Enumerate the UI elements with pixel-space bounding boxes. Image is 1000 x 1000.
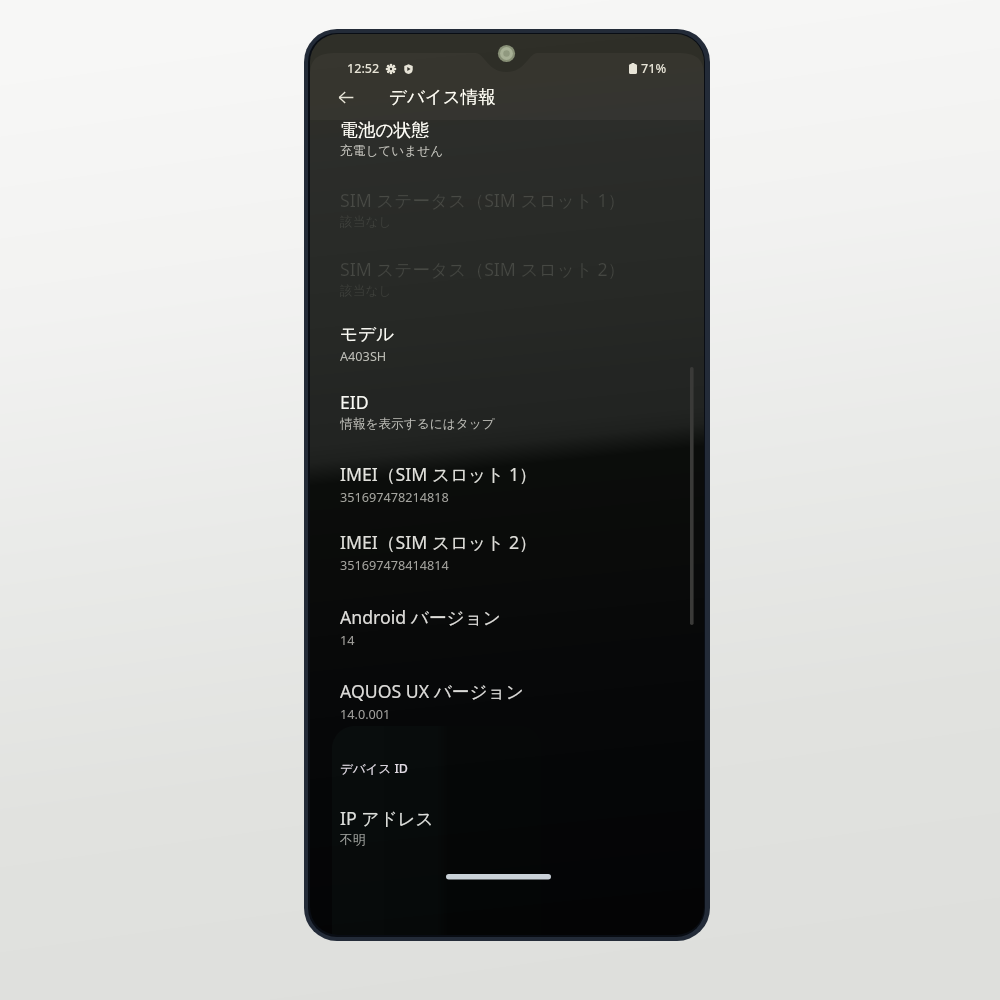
staticText: 不明 [340, 832, 366, 848]
staticText: 14.0.001 [340, 705, 391, 722]
button[interactable]: モデル [310, 301, 704, 368]
button[interactable]: EID [310, 368, 704, 438]
staticText: 14 [340, 631, 355, 648]
staticText: EID [340, 390, 369, 414]
button[interactable]: SIM ステータス（SIM スロット 2） [310, 234, 704, 302]
staticText: IP アドレス [340, 806, 434, 830]
staticText: モデル [340, 323, 395, 345]
button[interactable]: IMEI（SIM スロット 1） [310, 437, 704, 507]
staticText: 電池の状態 [340, 119, 429, 141]
staticText: IMEI（SIM スロット 1） [340, 462, 537, 486]
button[interactable]: Back [327, 78, 365, 116]
button[interactable]: IMEI（SIM スロット 2） [310, 507, 704, 579]
button[interactable]: Android バージョン [310, 579, 704, 654]
button[interactable]: デバイス ID [310, 729, 704, 793]
staticText: 351697478414814 [340, 556, 449, 573]
staticText: AQUOS UX バージョン [340, 679, 524, 703]
staticText: デバイス ID [340, 760, 408, 777]
staticText: 該当なし [340, 214, 392, 230]
staticText: SIM ステータス（SIM スロット 2） [340, 257, 626, 281]
button[interactable]: SIM ステータス（SIM スロット 1） [310, 165, 704, 234]
button[interactable]: 電池の状態 [310, 120, 704, 165]
staticText: 充電していません [340, 143, 444, 159]
button[interactable]: AQUOS UX バージョン [310, 653, 704, 729]
staticText: 351697478214818 [340, 488, 449, 505]
staticText: A403SH [340, 347, 387, 364]
staticText: 該当なし [340, 283, 392, 299]
button[interactable]: IP アドレス [310, 793, 704, 935]
staticText: 12:52 [347, 60, 380, 77]
staticText: SIM ステータス（SIM スロット 1） [340, 188, 626, 212]
staticText: 情報を表示するにはタップ [340, 416, 495, 432]
staticText: デバイス情報 [389, 86, 496, 108]
staticText: IMEI（SIM スロット 2） [340, 530, 537, 554]
staticText: 71% [641, 60, 667, 77]
staticText: Android バージョン [340, 605, 501, 629]
